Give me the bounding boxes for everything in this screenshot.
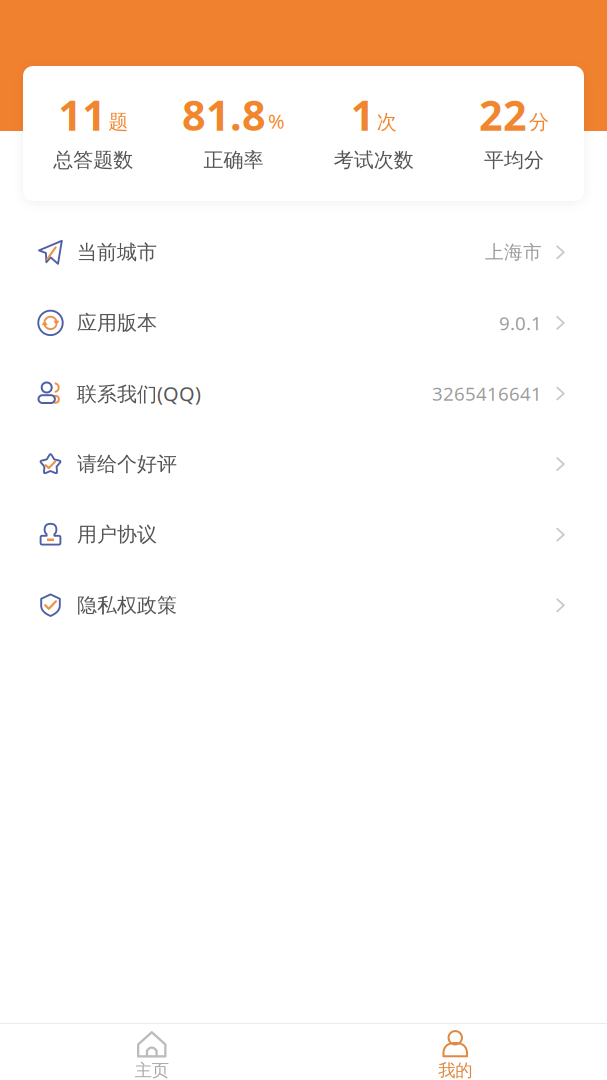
staticText: 请给个好评: [77, 452, 177, 476]
staticText: 应用版本: [77, 311, 157, 335]
staticText: 隐私权政策: [77, 593, 177, 618]
staticText: 总答题数: [53, 148, 133, 172]
staticText: 题: [108, 110, 128, 134]
staticText: %: [268, 108, 285, 134]
staticText: 9.0.1: [499, 310, 542, 335]
staticText: 分: [529, 110, 549, 134]
staticText: 次: [377, 110, 397, 134]
staticText: 当前城市: [77, 240, 157, 265]
staticText: 1: [351, 87, 375, 142]
staticText: 考试次数: [334, 148, 414, 172]
button[interactable]: 联系我们(QQ): [0, 358, 607, 429]
button[interactable]: 我的: [303, 1023, 607, 1080]
staticText: 22: [479, 87, 527, 142]
button[interactable]: 当前城市: [0, 217, 607, 288]
staticText: 我的: [438, 1060, 472, 1080]
button[interactable]: 主页: [0, 1023, 303, 1080]
staticText: 联系我们(QQ): [77, 380, 201, 407]
staticText: 11: [58, 87, 106, 142]
staticText: 3265416641: [432, 381, 542, 406]
button[interactable]: 请给个好评: [0, 429, 607, 499]
staticText: 用户协议: [77, 522, 157, 547]
button[interactable]: 隐私权政策: [0, 570, 607, 641]
staticText: 主页: [135, 1060, 169, 1080]
staticText: 上海市: [485, 241, 542, 264]
staticText: 正确率: [203, 148, 263, 172]
staticText: 平均分: [484, 148, 544, 172]
staticText: 81.8: [182, 87, 266, 142]
button[interactable]: 用户协议: [0, 499, 607, 570]
button[interactable]: 应用版本: [0, 288, 607, 358]
